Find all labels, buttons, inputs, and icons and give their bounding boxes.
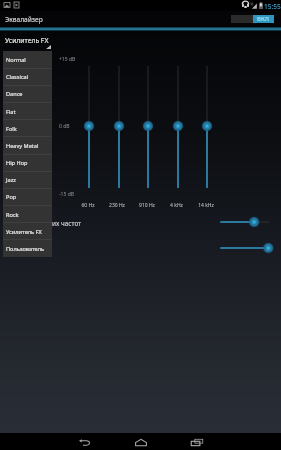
button[interactable]: Пользователь — [3, 240, 52, 257]
staticText: Flat — [6, 108, 16, 116]
staticText: Dance — [6, 90, 23, 98]
staticText: Heavy Metal — [6, 142, 39, 150]
button[interactable]: Band 60 Hz — [82, 60, 96, 194]
button[interactable]: Виртуализатор — [0, 242, 281, 254]
staticText: Jazz — [6, 176, 16, 184]
staticText: Hip Hop — [6, 159, 28, 167]
button[interactable]: Pop — [3, 188, 52, 205]
button[interactable]: Folk — [3, 120, 52, 137]
button[interactable]: Home — [127, 433, 155, 450]
staticText: 14 kHz — [198, 202, 214, 209]
button[interactable]: Dance — [3, 85, 52, 102]
staticText: Усилитель низких частот — [4, 219, 82, 228]
staticText: Pop — [6, 193, 17, 201]
staticText: Усилитель FX — [6, 228, 42, 236]
staticText: -15 dB — [59, 191, 74, 198]
staticText: Усилитель FX — [5, 36, 49, 45]
staticText: Эквалайзер — [5, 15, 43, 24]
staticText: Виртуализатор — [4, 245, 51, 254]
button[interactable]: Recent apps — [183, 433, 211, 450]
staticText: Folk — [6, 125, 17, 133]
staticText: 60 Hz — [81, 202, 95, 209]
button[interactable]: Jazz — [3, 171, 52, 188]
staticText: Пользователь — [6, 245, 44, 253]
staticText: 4 kHz — [170, 202, 183, 209]
button[interactable]: Band 230 Hz — [112, 60, 126, 194]
button[interactable]: Back — [71, 433, 99, 450]
button[interactable]: Усилитель FX — [3, 32, 52, 50]
button[interactable]: Heavy Metal — [3, 137, 52, 154]
staticText: 230 Hz — [109, 202, 125, 209]
staticText: Classical — [6, 73, 29, 81]
staticText: ВКЛ — [257, 15, 270, 23]
button[interactable]: Band 910 Hz — [141, 60, 155, 194]
button[interactable]: Classical — [3, 68, 52, 85]
button[interactable]: Усилитель FX — [3, 223, 52, 240]
staticText: 910 Hz — [139, 202, 155, 209]
staticText: +15 dB — [59, 56, 76, 63]
button[interactable]: Band 4 kHz — [171, 60, 185, 194]
button[interactable]: Band 14 kHz — [200, 60, 214, 194]
button[interactable]: Flat — [3, 103, 52, 120]
staticText: Normal — [6, 56, 26, 64]
button[interactable]: Equalizer on/off — [231, 15, 274, 23]
button[interactable]: Rock — [3, 206, 52, 223]
button[interactable]: Усилитель низких частот — [0, 216, 281, 228]
button[interactable]: Hip Hop — [3, 154, 52, 171]
staticText: 0 dB — [59, 123, 70, 130]
button[interactable]: Normal — [3, 51, 52, 68]
staticText: Rock — [6, 211, 19, 219]
staticText: 15:55 — [264, 2, 281, 11]
